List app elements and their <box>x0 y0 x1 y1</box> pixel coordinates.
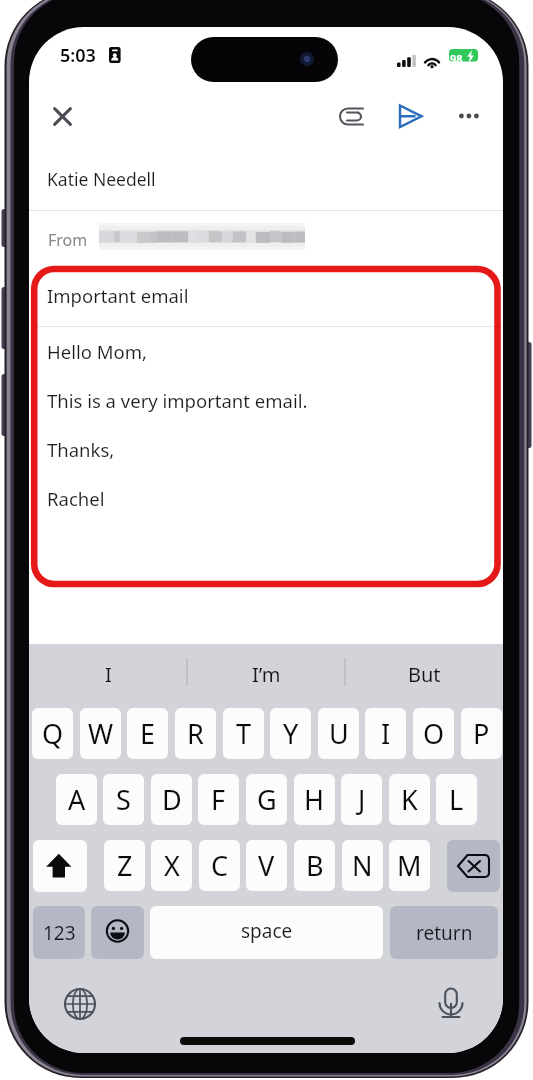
button[interactable]: L <box>436 774 477 825</box>
button[interactable]: space <box>150 906 383 959</box>
button[interactable]: K <box>389 774 430 825</box>
staticText: R <box>187 715 204 752</box>
button[interactable]: X <box>151 840 192 891</box>
button[interactable]: Change keyboard <box>64 988 96 1020</box>
staticText: D <box>162 781 182 818</box>
staticText: A <box>68 781 86 818</box>
button[interactable]: N <box>342 840 383 891</box>
button[interactable]: Dictate <box>435 987 467 1019</box>
staticText: Important email <box>47 283 189 308</box>
staticText: From <box>48 229 88 251</box>
button[interactable]: D <box>151 774 192 825</box>
staticText: I <box>105 661 112 688</box>
staticText: Q <box>42 715 64 752</box>
button[interactable]: S <box>103 774 144 825</box>
button[interactable]: A <box>56 774 97 825</box>
staticText: H <box>304 781 325 818</box>
button[interactable]: F <box>198 774 239 825</box>
staticText: Thanks, <box>47 437 115 462</box>
staticText: J <box>358 781 366 818</box>
staticText: Rachel <box>47 486 105 511</box>
button[interactable]: R <box>175 708 216 759</box>
button[interactable]: G <box>246 774 287 825</box>
button[interactable]: But <box>345 644 503 697</box>
staticText: Hello Mom, <box>47 339 147 364</box>
button[interactable]: Y <box>270 708 311 759</box>
staticText: But <box>408 661 441 688</box>
staticText: U <box>329 715 349 752</box>
button[interactable]: W <box>80 708 121 759</box>
button[interactable]: E <box>127 708 168 759</box>
button[interactable]: J <box>341 774 382 825</box>
staticText: I <box>381 715 391 752</box>
staticText: O <box>423 715 445 752</box>
button[interactable]: Z <box>104 840 145 891</box>
staticText: T <box>236 715 252 752</box>
button[interactable]: T <box>223 708 264 759</box>
staticText: P <box>473 715 490 752</box>
button[interactable]: 123 <box>33 906 85 959</box>
button[interactable]: Backspace <box>447 840 500 892</box>
button[interactable]: return <box>390 906 498 959</box>
staticText: B <box>306 847 324 884</box>
button[interactable]: P <box>461 708 502 759</box>
staticText: N <box>352 847 373 884</box>
staticText: W <box>88 715 114 752</box>
staticText: This is a very important email. <box>47 388 308 413</box>
button[interactable]: Attach <box>334 98 370 134</box>
button[interactable]: Q <box>32 708 73 759</box>
staticText: return <box>416 920 473 946</box>
staticText: V <box>258 847 275 884</box>
staticText: L <box>449 781 464 818</box>
button[interactable]: I <box>29 644 187 697</box>
staticText: F <box>211 781 226 818</box>
staticText: M <box>397 847 422 884</box>
staticText: Z <box>117 847 133 884</box>
button[interactable]: Emoji <box>91 906 144 959</box>
button[interactable]: Close <box>44 98 80 134</box>
staticText: K <box>401 781 418 818</box>
staticText: space <box>241 918 293 944</box>
button[interactable]: Shift <box>33 840 87 892</box>
staticText: Katie Needell <box>47 167 156 191</box>
button[interactable]: B <box>294 840 335 891</box>
button[interactable]: Send <box>392 98 428 134</box>
staticText: G <box>257 781 277 818</box>
staticText: E <box>140 715 156 752</box>
button[interactable]: M <box>389 840 430 891</box>
button[interactable]: I <box>365 708 406 759</box>
button[interactable]: C <box>199 840 240 891</box>
button[interactable]: O <box>413 708 454 759</box>
button[interactable]: H <box>294 774 335 825</box>
staticText: 98 <box>450 51 463 66</box>
button[interactable]: U <box>318 708 359 759</box>
staticText: Y <box>283 715 299 752</box>
button[interactable]: I’m <box>187 644 345 697</box>
staticText: C <box>211 847 229 884</box>
button[interactable]: V <box>246 840 287 891</box>
staticText: 123 <box>43 920 76 946</box>
button[interactable]: More options <box>451 98 487 134</box>
staticText: X <box>164 847 180 884</box>
staticText: 5:03 <box>60 43 96 68</box>
staticText: I’m <box>252 661 281 688</box>
staticText: S <box>116 781 131 818</box>
